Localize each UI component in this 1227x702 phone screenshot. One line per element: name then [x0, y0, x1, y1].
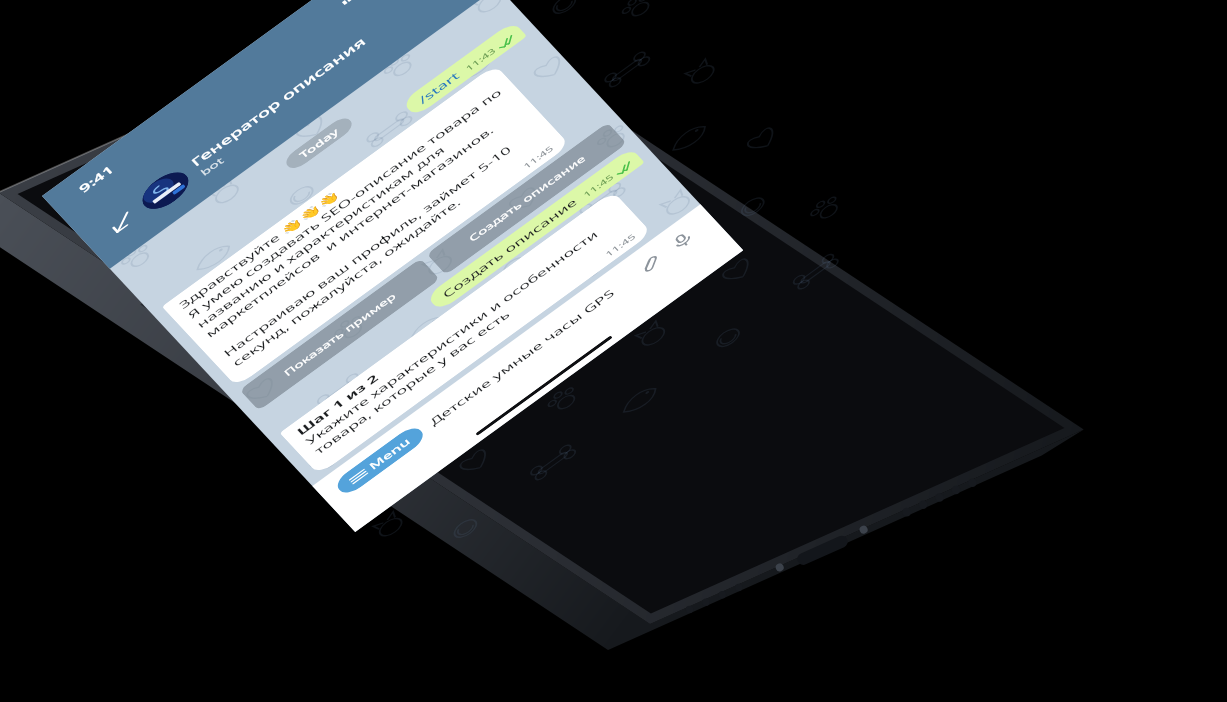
staticText: 11:43	[462, 44, 499, 74]
button[interactable]: Генератор описания товара	[180, 0, 444, 181]
staticText: Создать описание	[435, 194, 585, 302]
staticText: 9:41	[74, 161, 118, 197]
button[interactable]: Показать пример	[234, 256, 446, 413]
button[interactable]: More options	[417, 0, 475, 12]
staticText: Здравствуйте 👋👋👋 Я умею создавать SEO-оп…	[166, 67, 559, 377]
button[interactable]: Шаг 1 из 2	[269, 185, 663, 480]
button[interactable]: Voice message	[657, 218, 708, 263]
button[interactable]: Детские умные часы GPS	[420, 271, 643, 429]
staticText: Menu	[365, 434, 415, 473]
button[interactable]: Back	[90, 195, 153, 250]
button[interactable]: Создать описание	[419, 145, 651, 313]
button[interactable]: Attach file	[623, 243, 674, 288]
button[interactable]: Здравствуйте 👋👋👋 Я умею создавать SEO-оп…	[151, 54, 581, 397]
staticText: Шаг 1 из 2	[291, 370, 383, 439]
staticText: Укажите характеристики и особенности тов…	[292, 209, 642, 459]
button[interactable]: Создать описание	[421, 120, 633, 278]
button[interactable]: Today	[280, 113, 358, 174]
staticText: 11:45	[520, 142, 557, 172]
button[interactable]: Menu	[330, 421, 430, 499]
staticText: 11:45	[602, 230, 639, 260]
button[interactable]: /start	[398, 19, 531, 119]
staticText: Today	[295, 124, 343, 162]
staticText: Создать описание	[462, 151, 592, 245]
staticText: 11:45	[580, 170, 617, 200]
staticText: Генератор описания товара	[180, 0, 436, 171]
staticText: /start	[414, 67, 464, 108]
staticText: bot	[197, 153, 227, 179]
button[interactable]: Bot avatar	[134, 163, 197, 218]
staticText: Показать пример	[277, 289, 402, 380]
